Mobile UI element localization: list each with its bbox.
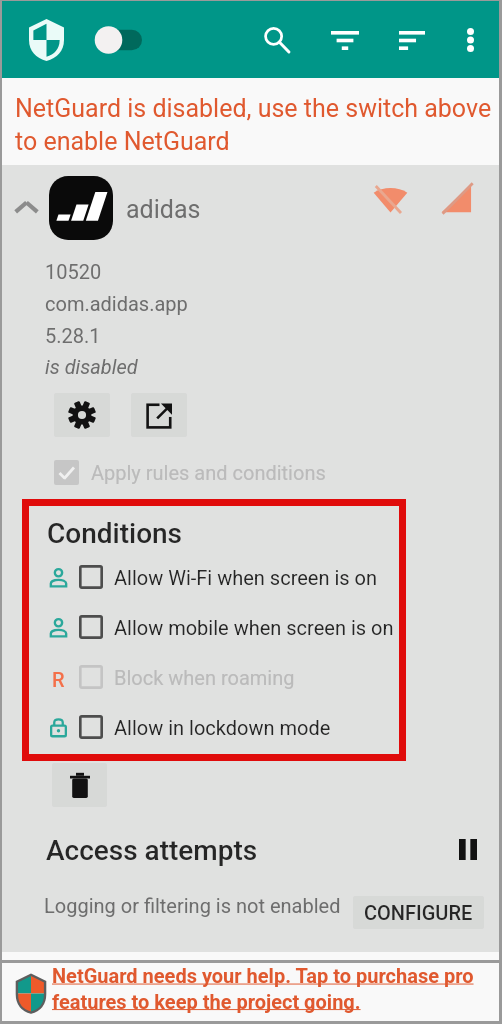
button[interactable]: Settings	[54, 393, 110, 437]
button[interactable]: NetGuard needs your help. Tap to purchas…	[2, 963, 499, 1021]
button[interactable]: Apply rules and conditions	[54, 451, 326, 493]
button[interactable]: Sort	[386, 14, 438, 66]
staticText: Allow mobile when screen is on	[114, 616, 394, 639]
staticText: NetGuard needs your help. Tap to purchas…	[52, 964, 502, 1013]
button[interactable]: CONFIGURE	[353, 896, 484, 929]
button[interactable]: NetGuard	[22, 14, 70, 66]
button[interactable]: Filter	[319, 14, 371, 66]
button[interactable]: Allow Wi-Fi when screen is on	[29, 555, 399, 599]
staticText: Allow in lockdown mode	[114, 716, 331, 739]
button[interactable]: Pause	[445, 826, 491, 872]
staticText: is disabled	[45, 355, 138, 378]
staticText: Allow Wi-Fi when screen is on	[114, 566, 378, 589]
staticText: R	[52, 668, 65, 687]
button[interactable]: R	[29, 655, 399, 699]
button[interactable]: Allow mobile when screen is on	[29, 605, 399, 649]
button[interactable]: adidas	[2, 166, 499, 251]
staticText: 5.28.1	[45, 324, 101, 347]
staticText: CONFIGURE	[364, 901, 473, 924]
staticText: NetGuard is disabled, use the switch abo…	[15, 94, 502, 156]
staticText: Access attempts	[46, 834, 258, 867]
button[interactable]: More options	[444, 14, 496, 66]
button[interactable]: Open app	[131, 393, 187, 437]
button[interactable]: Delete	[52, 763, 107, 807]
staticText: Block when roaming	[114, 666, 295, 689]
staticText: Conditions	[47, 517, 183, 550]
button[interactable]: Allow in lockdown mode	[29, 705, 399, 749]
button[interactable]: Mobile blocked	[434, 175, 480, 221]
staticText: adidas	[126, 195, 201, 224]
button[interactable]: Enable NetGuard	[90, 20, 148, 60]
button[interactable]: Search	[251, 14, 303, 66]
staticText: Apply rules and conditions	[91, 461, 326, 484]
staticText: 10520	[45, 260, 102, 283]
staticText: Logging or filtering is not enabled	[44, 894, 341, 917]
staticText: com.adidas.app	[45, 292, 188, 315]
button[interactable]: NetGuard is disabled, use the switch abo…	[2, 78, 499, 165]
button[interactable]: Wi-Fi blocked	[367, 176, 413, 222]
